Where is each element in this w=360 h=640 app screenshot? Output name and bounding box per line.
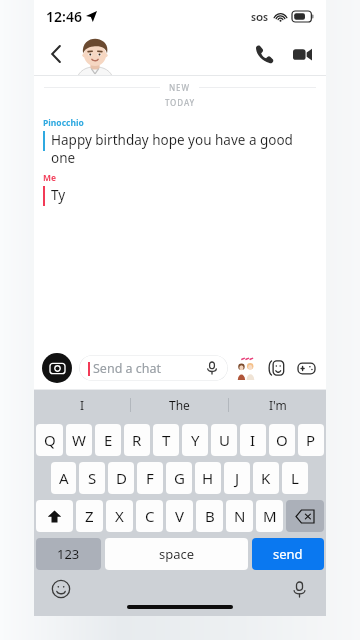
button[interactable]: C [136, 500, 163, 532]
button[interactable] [72, 32, 360, 76]
button[interactable]: W [66, 424, 92, 456]
staticText: P [306, 430, 316, 450]
staticText: O [276, 430, 288, 450]
button[interactable]: P [298, 424, 324, 456]
button[interactable]: send [252, 538, 324, 570]
staticText: C [145, 506, 155, 526]
staticText: Ty [51, 186, 66, 204]
button[interactable]: The [131, 390, 228, 420]
button[interactable]: O [269, 424, 295, 456]
staticText: SOS [251, 11, 269, 23]
button[interactable]: Camera [42, 353, 72, 383]
staticText: T [162, 430, 171, 450]
button[interactable]: D [108, 462, 134, 494]
staticText: 123 [57, 545, 80, 563]
button[interactable]: G [166, 462, 192, 494]
staticText: Me [43, 172, 57, 184]
button[interactable]: Dictation [286, 576, 312, 602]
button[interactable]: I [34, 390, 130, 420]
staticText: Z [85, 506, 94, 526]
button[interactable]: X [106, 500, 133, 532]
staticText: X [115, 506, 124, 526]
button[interactable]: N [226, 500, 253, 532]
button[interactable]: Emoji keyboard [48, 576, 74, 602]
button[interactable]: Shift [36, 500, 73, 532]
staticText: The [169, 397, 190, 413]
staticText: Send a chat [93, 360, 162, 377]
button[interactable]: Me [34, 172, 326, 206]
button[interactable]: U [211, 424, 237, 456]
staticText: Q [44, 430, 56, 450]
staticText: W [72, 430, 86, 450]
staticText: N [234, 506, 246, 526]
button[interactable]: J [224, 462, 250, 494]
staticText: I [80, 397, 85, 413]
staticText: A [59, 468, 69, 488]
button[interactable]: 123 [36, 538, 101, 570]
staticText: I'm [269, 397, 287, 413]
button[interactable]: F [137, 462, 163, 494]
button[interactable]: R [124, 424, 150, 456]
button[interactable]: E [95, 424, 121, 456]
staticText: TODAY [34, 97, 326, 108]
staticText: F [146, 468, 154, 488]
button[interactable]: B [196, 500, 223, 532]
button[interactable]: Video call [286, 38, 318, 70]
staticText: Happy birthday hope you have a good one [51, 131, 318, 167]
button[interactable]: K [253, 462, 279, 494]
button[interactable]: A [51, 462, 76, 494]
staticText: J [235, 468, 240, 488]
button[interactable]: V [166, 500, 193, 532]
button[interactable]: H [195, 462, 221, 494]
staticText: H [202, 468, 214, 488]
button[interactable]: Stickers [264, 356, 288, 380]
button[interactable]: space [105, 538, 248, 570]
staticText: D [116, 468, 127, 488]
staticText: L [291, 468, 299, 488]
staticText: V [175, 506, 185, 526]
button[interactable]: Voice note [203, 359, 221, 377]
button[interactable]: I'm [229, 390, 326, 420]
button[interactable]: Call [248, 38, 280, 70]
staticText: E [104, 430, 113, 450]
button[interactable]: Pinocchio [34, 117, 326, 167]
button[interactable]: M [256, 500, 283, 532]
button[interactable]: I [240, 424, 266, 456]
staticText: I [250, 430, 256, 450]
button[interactable]: Bitmoji stickers [234, 356, 258, 380]
staticText: 12:46 [46, 7, 82, 26]
staticText: G [174, 468, 185, 488]
staticText: M [263, 506, 277, 526]
button[interactable]: Send a chat [79, 355, 228, 381]
staticText: Y [191, 430, 200, 450]
button[interactable]: Z [76, 500, 103, 532]
staticText: NEW [169, 82, 190, 93]
staticText: U [219, 430, 230, 450]
button[interactable]: Y [182, 424, 208, 456]
staticText: space [159, 545, 195, 563]
staticText: send [273, 545, 303, 563]
button[interactable]: Q [36, 424, 63, 456]
staticText: B [205, 506, 215, 526]
staticText: R [132, 430, 142, 450]
button[interactable]: Back [40, 37, 74, 71]
button[interactable]: Backspace [286, 500, 324, 532]
button[interactable]: S [79, 462, 105, 494]
staticText: S [88, 468, 97, 488]
staticText: Pinocchio [43, 117, 84, 129]
button[interactable]: T [153, 424, 179, 456]
staticText: K [261, 468, 271, 488]
button[interactable]: Games [294, 356, 318, 380]
button[interactable]: L [282, 462, 308, 494]
